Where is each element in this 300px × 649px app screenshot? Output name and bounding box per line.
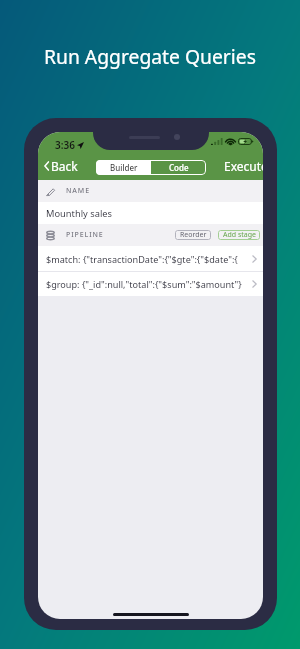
button[interactable]: Code — [151, 160, 206, 175]
staticText: Code — [169, 162, 189, 173]
staticText: $group: {"_id":null,"total":{"$sum":"$am… — [46, 278, 248, 290]
button[interactable]: $group: {"_id":null,"total":{"$sum":"$am… — [38, 272, 263, 296]
staticText: PIPELINE — [66, 230, 104, 240]
button[interactable]: Mounthly sales — [38, 202, 263, 224]
button[interactable]: Reorder — [175, 230, 211, 240]
button[interactable]: Add stage — [218, 230, 260, 240]
staticText: NAME — [66, 186, 90, 196]
staticText: Execute — [224, 158, 263, 174]
staticText: Run Aggregate Queries — [44, 43, 256, 69]
button[interactable]: Execute — [224, 153, 263, 179]
staticText: Back — [51, 158, 78, 174]
button[interactable]: Builder — [96, 160, 151, 175]
staticText: Mounthly sales — [46, 207, 112, 220]
staticText: Add stage — [223, 230, 256, 240]
staticText: 3:36 — [55, 138, 75, 152]
button[interactable]: Back — [41, 153, 81, 179]
staticText: Reorder — [180, 230, 207, 240]
staticText: Builder — [110, 162, 138, 173]
button[interactable]: $match: {"transactionDate":{"$gte":{"$da… — [38, 246, 263, 271]
staticText: $match: {"transactionDate":{"$gte":{"$da… — [46, 253, 248, 265]
